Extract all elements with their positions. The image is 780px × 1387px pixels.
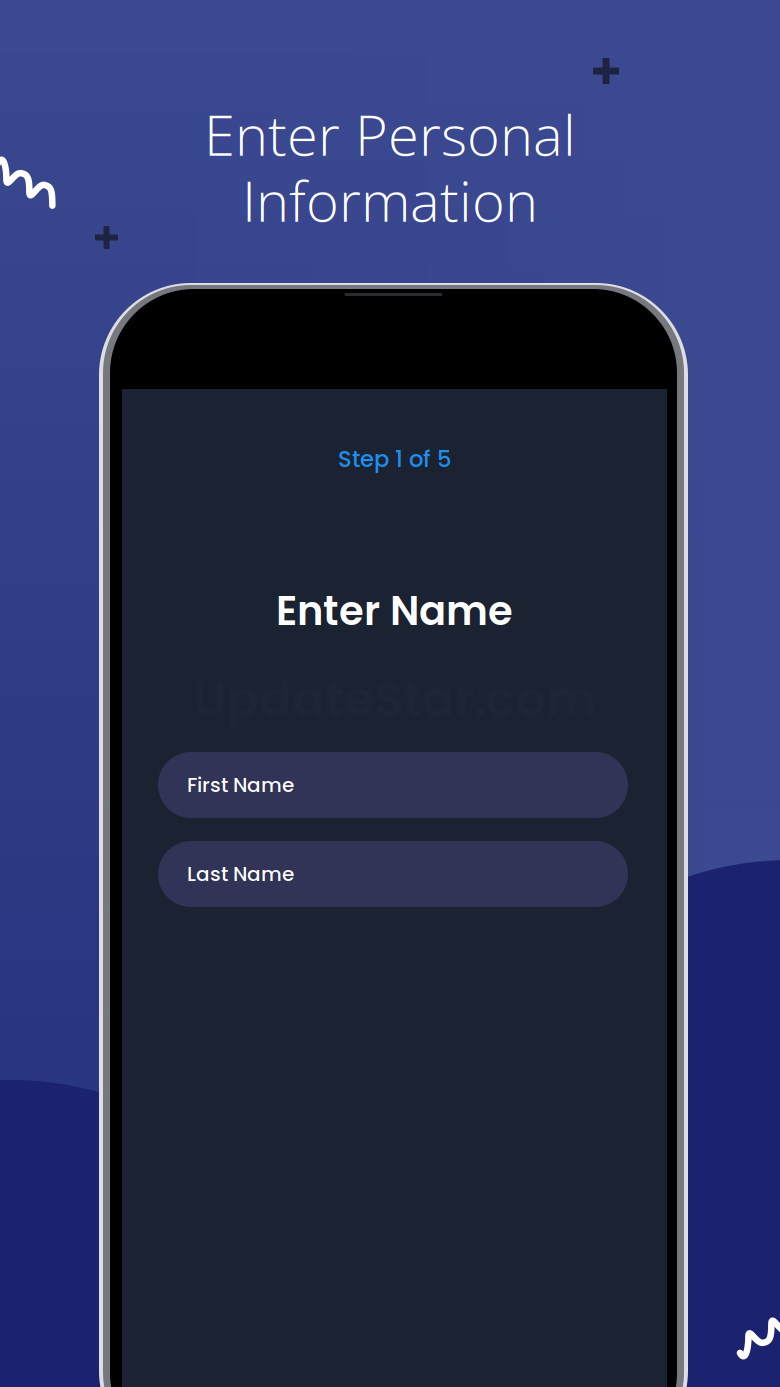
button[interactable]: First Name [158,752,628,818]
staticText: Step 1 of 5 [338,443,451,475]
button[interactable]: Last Name [158,841,628,907]
staticText: Last Name [187,860,294,888]
staticText: Enter Name [276,583,513,639]
staticText: Information [242,162,538,238]
button[interactable]: Step 1 of 5 [122,446,667,472]
staticText: First Name [187,771,294,799]
staticText: Enter Personal [204,96,576,172]
